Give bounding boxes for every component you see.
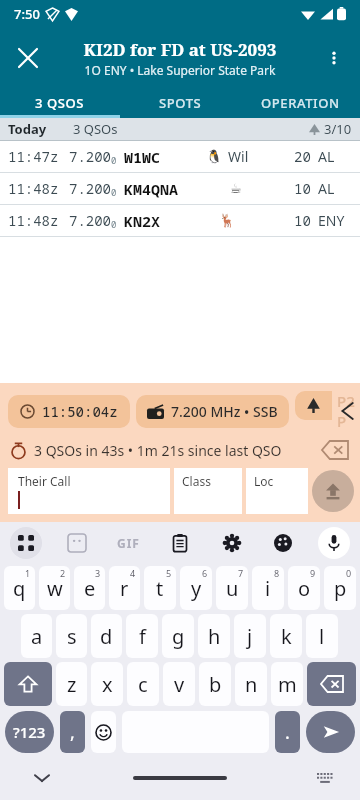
button[interactable]: z (56, 662, 87, 706)
button[interactable]: Theme (266, 526, 300, 560)
staticText: 8 (274, 567, 280, 579)
staticText: ☕ (230, 181, 242, 196)
button[interactable]: ?123 (5, 711, 54, 753)
staticText: u (226, 575, 239, 602)
button[interactable]: Emoji (91, 711, 116, 753)
button[interactable]: p (324, 566, 356, 610)
button[interactable]: l (306, 614, 338, 658)
staticText: GIF (117, 535, 140, 551)
staticText: l (319, 623, 325, 650)
staticText: 11:48z (8, 179, 59, 198)
button[interactable]: Loc (246, 468, 308, 514)
button[interactable]: g (162, 614, 194, 658)
button[interactable]: Stickers (60, 526, 94, 560)
button[interactable]: OPERATION (240, 88, 360, 118)
button[interactable]: y (180, 566, 212, 610)
staticText: ENY (318, 211, 345, 230)
staticText: o (298, 575, 311, 602)
button[interactable]: u (216, 566, 248, 610)
button[interactable]: Send (306, 711, 355, 753)
button[interactable]: k (270, 614, 302, 658)
staticText: s (67, 623, 77, 650)
staticText: m (278, 671, 297, 698)
staticText: x (102, 671, 113, 698)
staticText: 11:47z (8, 147, 59, 166)
staticText: 11:48z (8, 211, 59, 230)
staticText: 3 QSOS (35, 94, 85, 112)
button[interactable]: Their Call (8, 468, 170, 514)
staticText: 20 (294, 147, 311, 166)
staticText: e (84, 575, 96, 602)
button[interactable]: More options (314, 38, 354, 78)
staticText: k (281, 623, 292, 650)
staticText: n (245, 671, 258, 698)
button[interactable]: GIF (111, 526, 145, 560)
staticText: 1 (25, 567, 31, 579)
button[interactable]: Apps (10, 527, 42, 559)
staticText: g (172, 623, 185, 650)
button[interactable]: e (74, 566, 105, 610)
button[interactable]: r (109, 566, 140, 610)
button[interactable]: j (234, 614, 266, 658)
staticText: Their Call (18, 473, 71, 489)
button[interactable]: Class (174, 468, 242, 514)
button[interactable]: 7.200 MHz • SSB (136, 395, 289, 428)
button[interactable]: Settings (215, 526, 249, 560)
button[interactable]: 11:48z (0, 173, 360, 204)
button[interactable]: POTA park (295, 391, 332, 420)
staticText: KI2D for FD at US-2093 (48, 38, 312, 61)
button[interactable]: Log QSO (312, 470, 354, 512)
staticText: AL (318, 179, 335, 198)
button[interactable]: f (126, 614, 158, 658)
button[interactable]: o (288, 566, 320, 610)
staticText: 11:50:04z (42, 402, 118, 421)
staticText: AL (318, 147, 335, 166)
staticText: 9 (310, 567, 316, 579)
button[interactable]: i (252, 566, 284, 610)
button[interactable]: SPOTS (120, 88, 240, 118)
button[interactable]: a (21, 614, 52, 658)
staticText: OPERATION (261, 94, 340, 112)
button[interactable]: n (235, 662, 267, 706)
button[interactable]: w (39, 566, 70, 610)
button[interactable]: b (199, 662, 231, 706)
button[interactable]: d (91, 614, 122, 658)
staticText: r (120, 575, 129, 602)
button[interactable]: 3 QSOS (0, 88, 120, 118)
button[interactable]: . (275, 711, 300, 753)
staticText: 10 (294, 211, 311, 230)
button[interactable]: Backspace (318, 433, 352, 467)
button[interactable]: 11:47z (0, 141, 360, 172)
button[interactable]: Shift (4, 662, 52, 706)
staticText: 10 (294, 179, 311, 198)
staticText: P2P (337, 391, 360, 431)
staticText: 0 (346, 567, 352, 579)
button[interactable]: s (56, 614, 87, 658)
staticText: KM4QNA (124, 179, 179, 199)
button[interactable]: , (60, 711, 85, 753)
button[interactable]: m (271, 662, 303, 706)
staticText: 3 QSOs (73, 120, 118, 138)
button[interactable]: 11:48z (0, 205, 360, 236)
button[interactable]: Voice input (318, 527, 350, 559)
staticText: q (13, 575, 26, 602)
button[interactable]: x (91, 662, 123, 706)
button[interactable]: Close (6, 36, 50, 80)
button[interactable]: q (4, 566, 35, 610)
staticText: 0 (111, 186, 117, 198)
button[interactable]: Hide keyboard (28, 764, 56, 792)
button[interactable]: Backspace (307, 662, 356, 706)
staticText: ?123 (13, 722, 46, 742)
button[interactable]: Clipboard (163, 526, 197, 560)
button[interactable]: h (198, 614, 230, 658)
staticText: 🦌 (219, 213, 236, 228)
button[interactable]: c (127, 662, 159, 706)
button[interactable]: 11:50:04z (8, 395, 130, 428)
button[interactable]: t (144, 566, 176, 610)
button[interactable]: v (163, 662, 195, 706)
staticText: SPOTS (159, 94, 202, 112)
staticText: 3/10 (324, 120, 352, 138)
button[interactable]: Switch keyboard (312, 765, 338, 791)
staticText: h (208, 623, 221, 650)
